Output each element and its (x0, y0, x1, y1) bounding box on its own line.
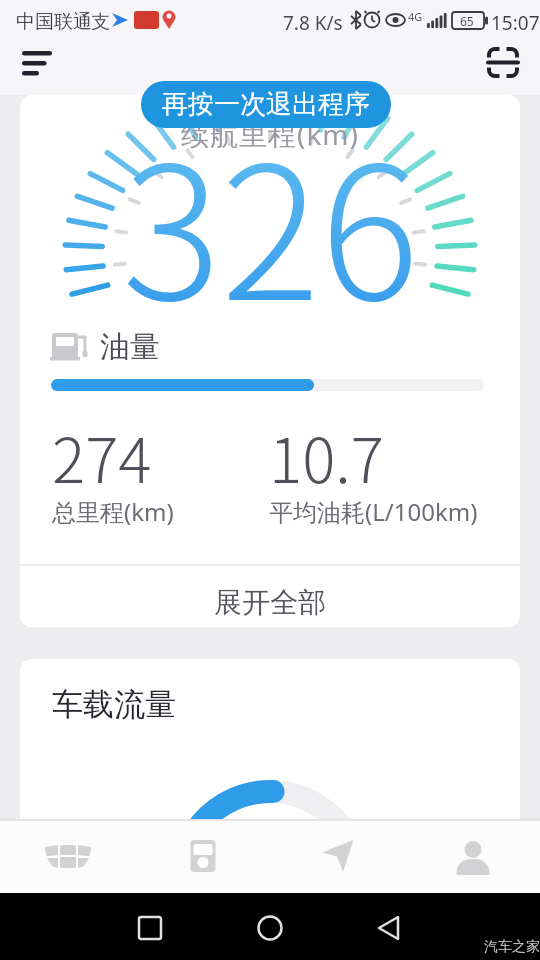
staticText: 展开全部 (214, 585, 326, 620)
button[interactable] (135, 819, 270, 893)
staticText: 支 (91, 10, 110, 34)
staticText: 65 (460, 13, 474, 29)
staticText: 车载流量 (52, 685, 176, 724)
staticText: 油量 (100, 328, 160, 366)
staticText: 中国联通 (16, 10, 92, 34)
staticText: 326 (122, 95, 419, 353)
button[interactable] (0, 819, 135, 893)
staticText: 10.7 (269, 411, 385, 501)
button[interactable] (12, 41, 62, 85)
staticText: 总里程(km) (52, 495, 174, 528)
button[interactable] (270, 819, 405, 893)
staticText: 汽车之家 (484, 938, 540, 956)
staticText: 再按一次退出程序 (162, 88, 370, 121)
staticText: 平均油耗(L/100km) (269, 495, 478, 528)
staticText: 274 (52, 411, 152, 501)
staticText: 7.8 K/s (283, 10, 343, 36)
button[interactable]: 再按一次退出程序 (141, 81, 391, 128)
button[interactable] (405, 819, 540, 893)
staticText: 15:07 (491, 10, 540, 36)
button[interactable] (478, 41, 528, 85)
staticText: 4G (408, 9, 423, 24)
staticText: 续航里程(km) (181, 115, 359, 153)
button[interactable]: 展开全部 (214, 585, 326, 620)
